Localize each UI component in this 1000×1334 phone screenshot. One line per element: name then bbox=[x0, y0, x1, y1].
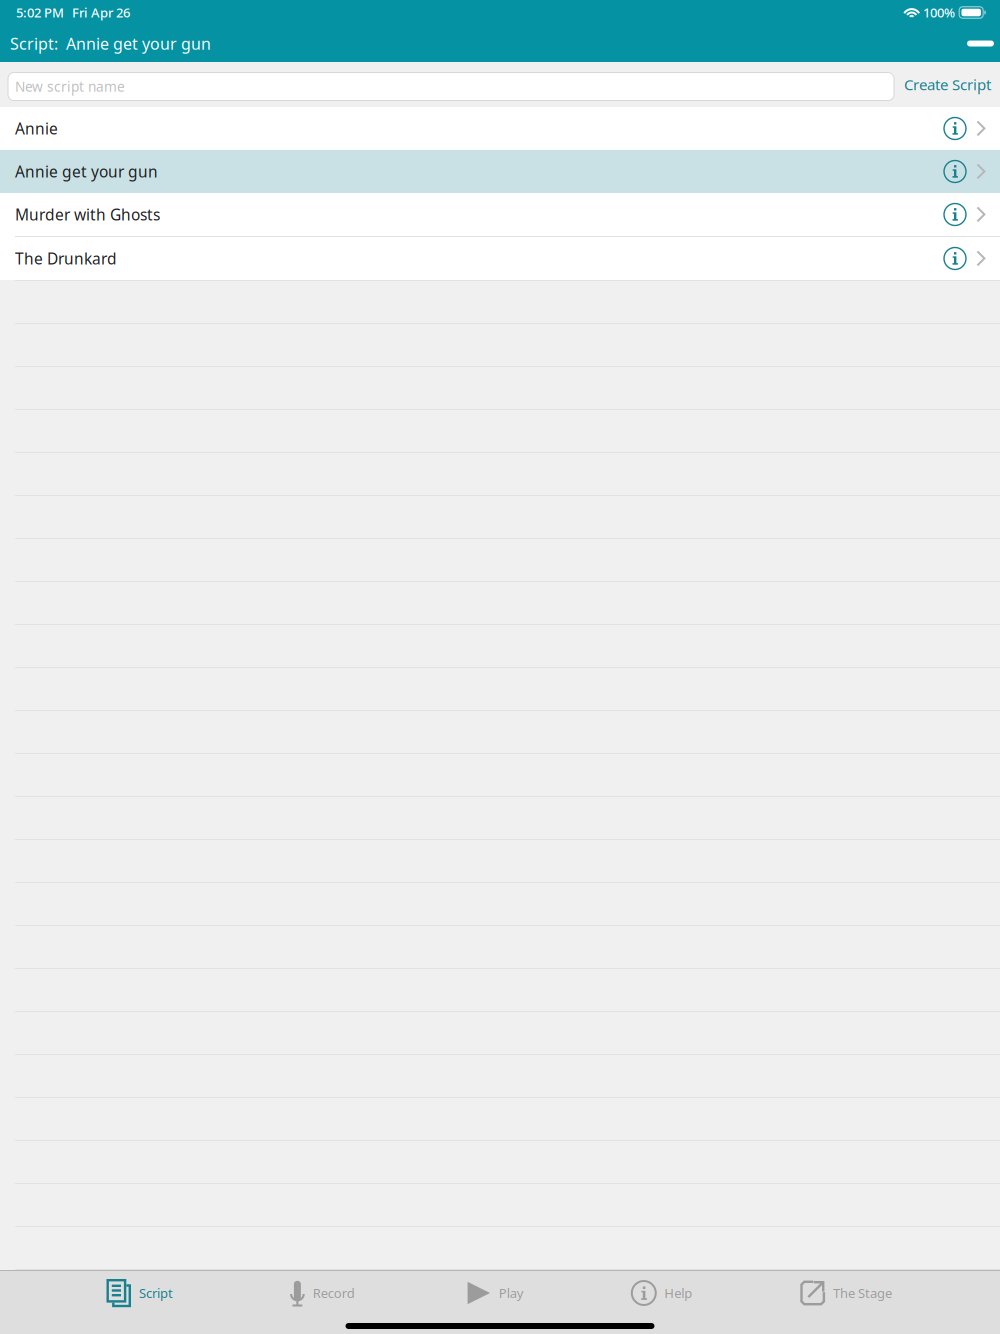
staticText: The Stage bbox=[833, 1284, 892, 1302]
button[interactable]: Annie get your gun bbox=[0, 150, 1000, 193]
staticText: Play bbox=[499, 1284, 524, 1302]
button[interactable]: Record bbox=[286, 1271, 359, 1315]
staticText: Annie bbox=[15, 118, 58, 139]
button[interactable]: Hide panel bbox=[963, 31, 998, 55]
staticText: 5:02 PM bbox=[16, 4, 64, 21]
button[interactable]: Annie bbox=[0, 107, 1000, 150]
staticText: Fri Apr 26 bbox=[72, 4, 130, 21]
button[interactable]: Play bbox=[463, 1271, 528, 1315]
staticText: Murder with Ghosts bbox=[15, 204, 160, 225]
staticText: New script name bbox=[15, 77, 125, 96]
staticText: Create Script bbox=[904, 74, 991, 95]
staticText: Script bbox=[139, 1284, 173, 1302]
staticText: Help bbox=[664, 1284, 692, 1302]
staticText: The Drunkard bbox=[15, 248, 117, 269]
button[interactable]: Help bbox=[627, 1271, 696, 1315]
staticText: Record bbox=[313, 1284, 355, 1302]
button[interactable]: Murder with Ghosts bbox=[0, 193, 1000, 236]
button[interactable]: The Stage bbox=[796, 1271, 896, 1315]
staticText: 100% bbox=[923, 4, 955, 21]
button[interactable]: Create Script bbox=[894, 66, 1000, 103]
button[interactable]: Script bbox=[102, 1271, 177, 1315]
button[interactable]: The Drunkard bbox=[0, 237, 1000, 280]
staticText: Annie get your gun bbox=[15, 161, 158, 182]
staticText: Script: Annie get your gun bbox=[10, 33, 211, 54]
